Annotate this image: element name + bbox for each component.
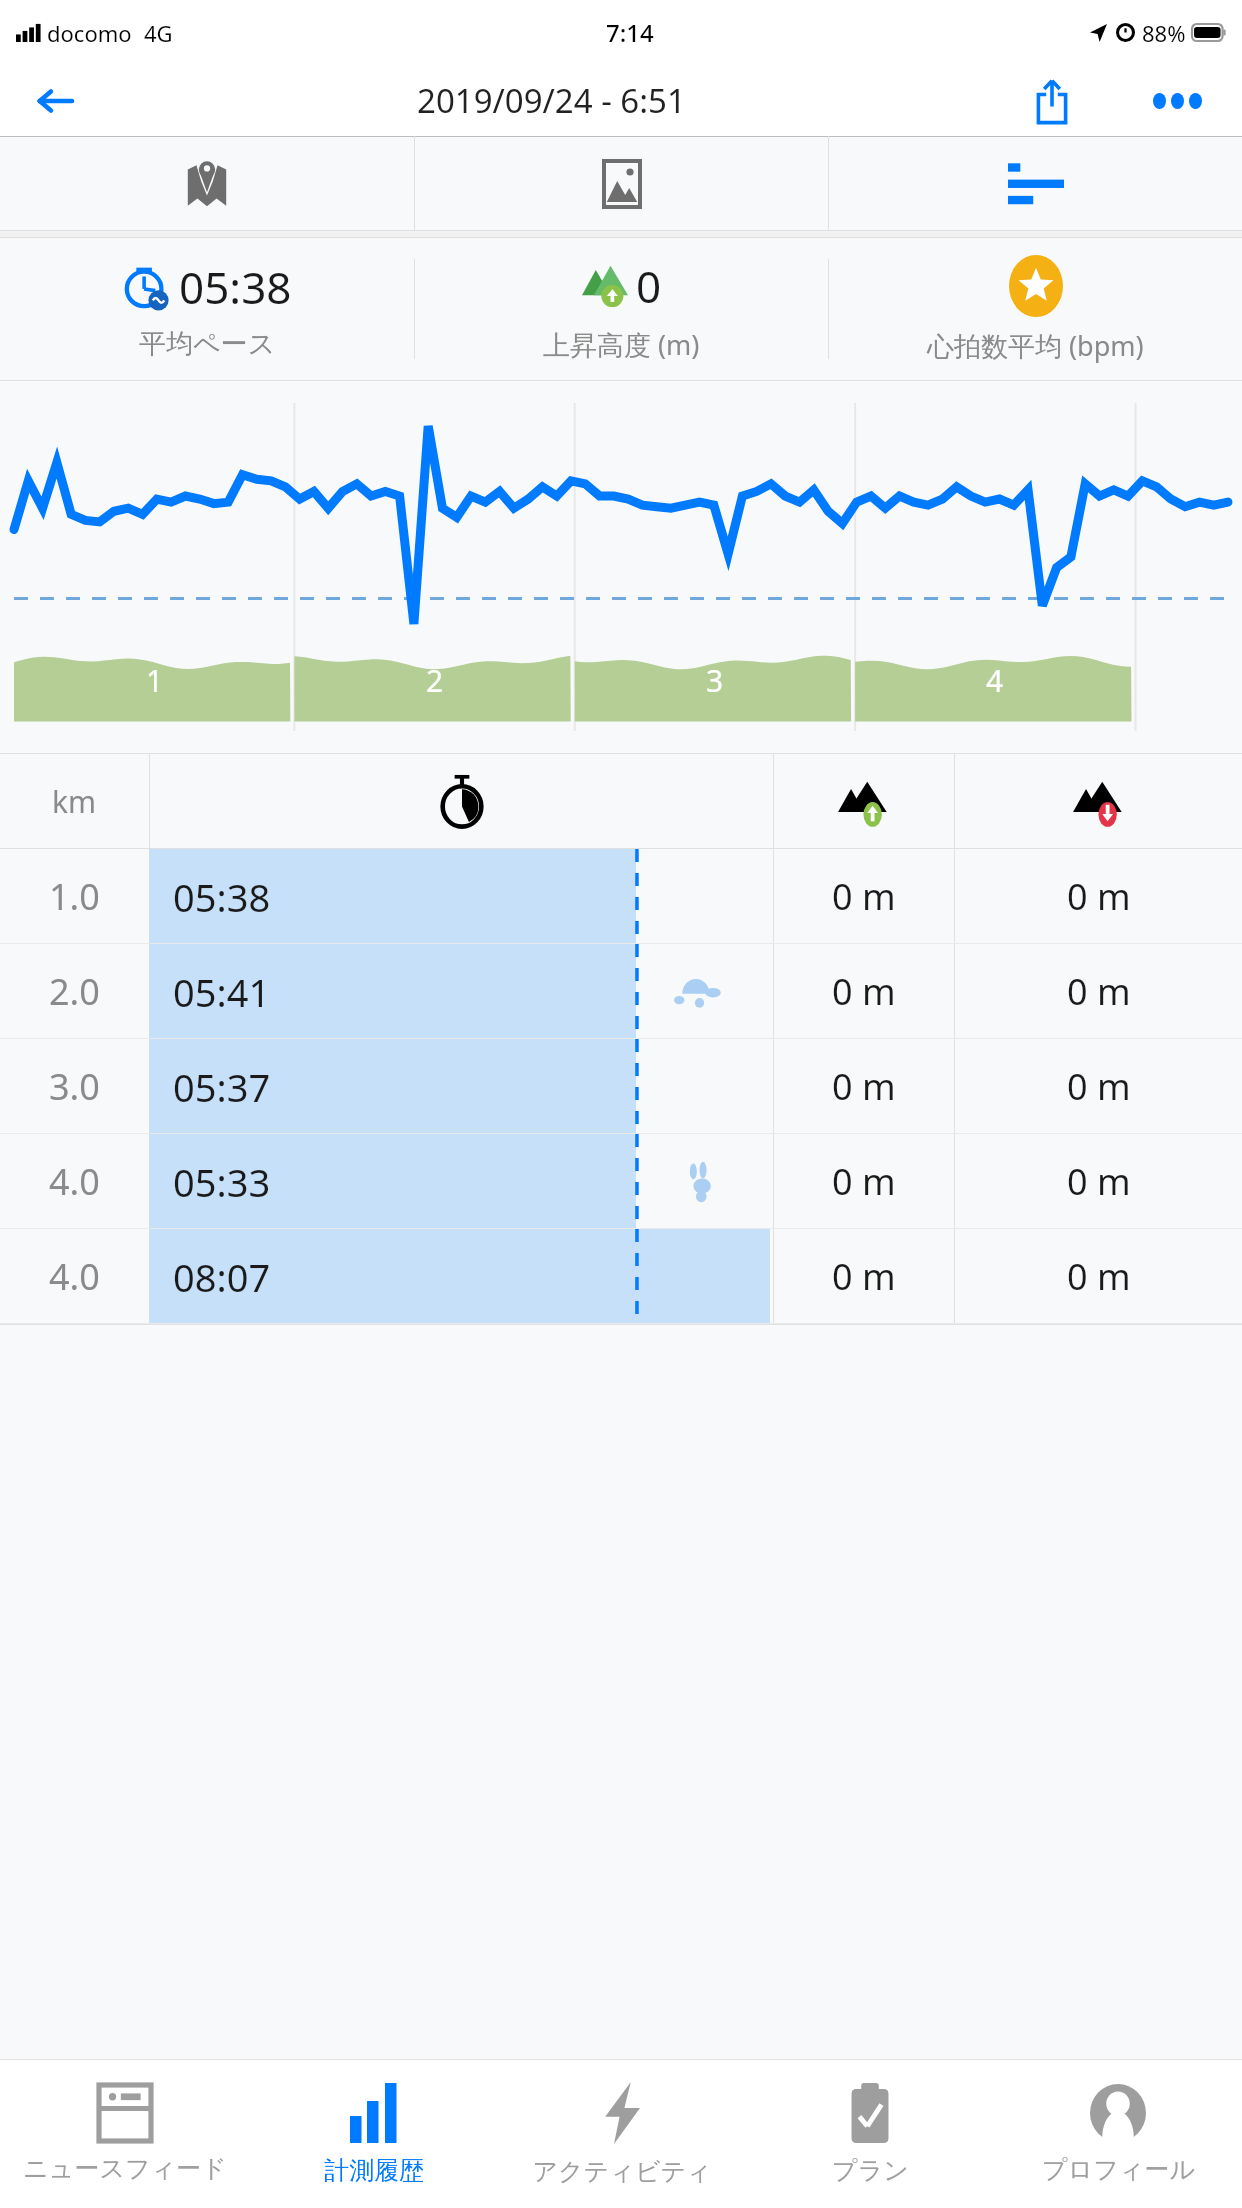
staticText: 2019/09/24 - 6:51 — [417, 78, 686, 123]
staticText: 0 m — [1067, 1157, 1131, 1206]
staticText: 2.0 — [49, 967, 100, 1016]
button[interactable]: 0 m — [774, 1229, 954, 1324]
staticText: 4.0 — [49, 1252, 100, 1301]
staticText: 4G — [144, 18, 173, 48]
button[interactable]: 0 m — [774, 1039, 954, 1134]
staticText: 4.0 — [49, 1157, 100, 1206]
button[interactable]: プロフィール — [994, 2060, 1242, 2208]
staticText: 上昇高度 (m) — [543, 326, 700, 363]
staticText: docomo — [47, 18, 132, 48]
staticText: 05:38 — [179, 257, 292, 317]
button[interactable]: 05:33 — [149, 1134, 773, 1229]
staticText: 7:14 — [606, 16, 654, 49]
button[interactable]: プラン — [746, 2060, 994, 2208]
staticText: 3 — [706, 660, 724, 701]
staticText: 0 m — [1067, 872, 1131, 921]
staticText: 4 — [986, 660, 1004, 701]
button[interactable]: 1.0 — [0, 849, 149, 944]
staticText: 2 — [426, 660, 444, 701]
button[interactable]: 08:07 — [149, 1229, 773, 1324]
staticText: 05:37 — [173, 1061, 271, 1113]
button[interactable]: More options — [1112, 65, 1242, 136]
button[interactable]: 05:41 — [149, 944, 773, 1039]
button[interactable]: アクティビティ — [498, 2060, 746, 2208]
button[interactable]: 0 m — [955, 1039, 1242, 1134]
button[interactable]: 0 m — [955, 849, 1242, 944]
button[interactable]: 計測履歴 — [249, 2060, 498, 2208]
staticText: 08:07 — [173, 1251, 271, 1303]
staticText: 1 — [146, 660, 164, 701]
staticText: 0 m — [832, 872, 896, 921]
button[interactable]: 05:37 — [149, 1039, 773, 1134]
staticText: 0 m — [832, 1252, 896, 1301]
button[interactable]: 0 m — [955, 944, 1242, 1039]
staticText: ニュースフィード — [23, 2153, 227, 2184]
button[interactable]: 心拍数平均 (bpm) — [829, 238, 1242, 380]
button[interactable]: ニュースフィード — [0, 2060, 249, 2208]
staticText: km — [52, 781, 97, 822]
button[interactable]: Photos — [415, 136, 828, 231]
staticText: 平均ペース — [139, 327, 276, 361]
staticText: 3.0 — [49, 1062, 100, 1111]
button[interactable]: 05:38 — [149, 849, 773, 944]
button[interactable]: 2.0 — [0, 944, 149, 1039]
staticText: 0 m — [1067, 1252, 1131, 1301]
staticText: 0 m — [832, 1062, 896, 1111]
button[interactable]: Charts — [829, 136, 1242, 231]
button[interactable]: 4.0 — [0, 1229, 149, 1324]
staticText: 0 m — [1067, 967, 1131, 1016]
button[interactable]: Back — [0, 65, 110, 136]
button[interactable]: 4.0 — [0, 1134, 149, 1229]
button[interactable]: Share — [992, 65, 1112, 136]
staticText: プロフィール — [1042, 2154, 1195, 2185]
staticText: 1.0 — [49, 872, 100, 921]
staticText: プラン — [832, 2155, 909, 2186]
staticText: 心拍数平均 (bpm) — [927, 327, 1144, 364]
staticText: アクティビティ — [532, 2156, 712, 2187]
button[interactable]: 0 m — [774, 1134, 954, 1229]
staticText: 0 m — [1067, 1062, 1131, 1111]
staticText: 0 m — [832, 1157, 896, 1206]
staticText: 05:33 — [173, 1156, 271, 1208]
button[interactable]: 3.0 — [0, 1039, 149, 1134]
button[interactable]: 0 m — [955, 1229, 1242, 1324]
staticText: 05:38 — [173, 871, 271, 923]
staticText: 05:41 — [173, 966, 271, 1018]
staticText: 88% — [1142, 18, 1186, 48]
button[interactable]: 0 — [415, 238, 828, 380]
button[interactable]: 0 m — [774, 849, 954, 944]
button[interactable]: Map — [0, 136, 414, 231]
button[interactable]: 0 m — [955, 1134, 1242, 1229]
button[interactable]: 0 m — [774, 944, 954, 1039]
button[interactable]: 05:38 — [0, 238, 414, 380]
staticText: 計測履歴 — [324, 2155, 424, 2186]
staticText: 0 m — [832, 967, 896, 1016]
staticText: 0 — [636, 256, 662, 316]
